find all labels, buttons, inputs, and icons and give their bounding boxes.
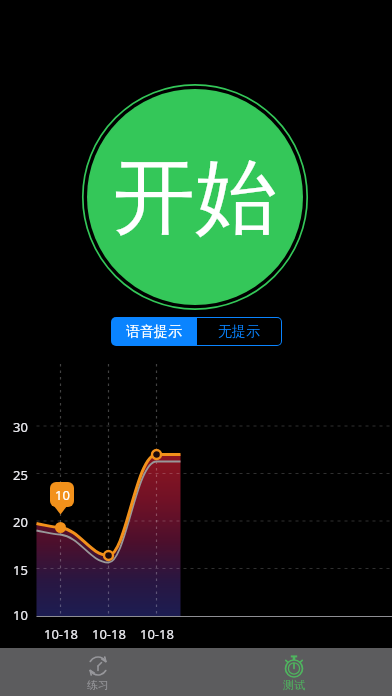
staticText: 10 bbox=[55, 486, 70, 504]
staticText: 10-18 bbox=[92, 625, 126, 641]
staticText: 25 bbox=[13, 466, 28, 482]
staticText: 10-18 bbox=[140, 625, 174, 641]
staticText: 20 bbox=[13, 513, 28, 529]
staticText: 练习 bbox=[87, 678, 109, 692]
button[interactable]: 无提示 bbox=[196, 317, 282, 346]
staticText: 语音提示 bbox=[126, 323, 182, 341]
staticText: 无提示 bbox=[218, 323, 260, 341]
staticText: 30 bbox=[13, 418, 28, 434]
button[interactable]: 练习 bbox=[0, 648, 196, 696]
staticText: 开始 bbox=[113, 146, 277, 249]
button[interactable]: 语音提示 bbox=[111, 317, 196, 346]
staticText: 10 bbox=[13, 606, 28, 622]
button[interactable]: 开始 bbox=[82, 84, 308, 310]
staticText: 测试 bbox=[283, 678, 305, 692]
staticText: 10-18 bbox=[44, 625, 78, 641]
staticText: 15 bbox=[13, 561, 28, 577]
button[interactable]: 测试 bbox=[196, 648, 392, 696]
